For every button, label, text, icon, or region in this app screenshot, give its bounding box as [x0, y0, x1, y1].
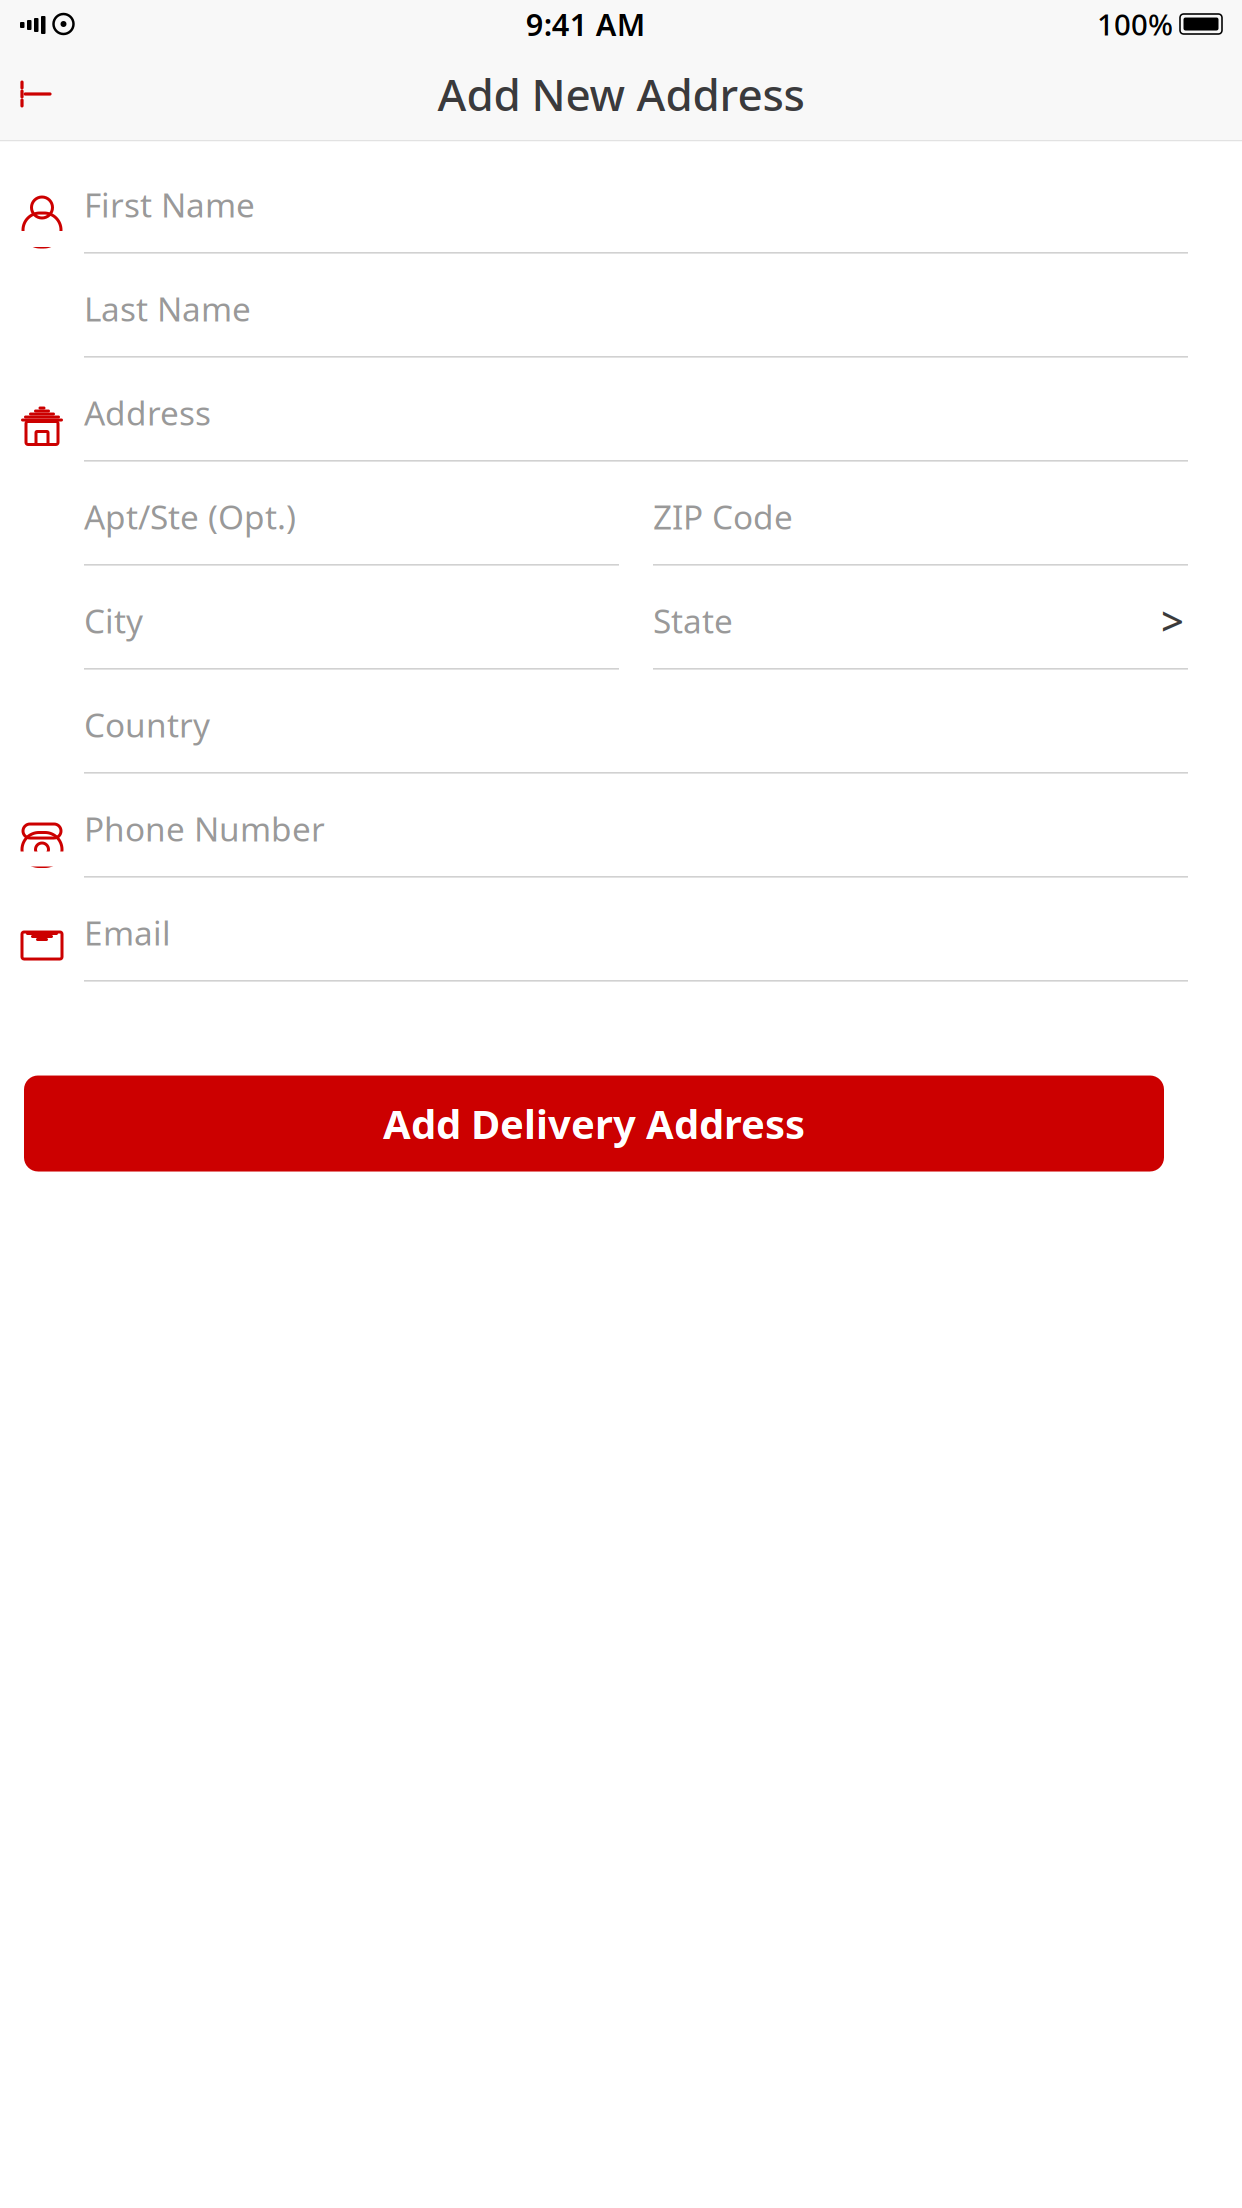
- staticText: Email: [84, 910, 171, 955]
- button[interactable]: Apt/Ste (Opt.): [84, 493, 619, 565]
- button[interactable]: Last Name: [84, 285, 1188, 357]
- button[interactable]: First Name: [84, 181, 1188, 253]
- staticText: Country: [84, 702, 210, 747]
- staticText: 100%: [1097, 4, 1173, 43]
- staticText: 9:41 AM: [526, 4, 645, 44]
- button[interactable]: State: [653, 597, 1188, 669]
- staticText: Add Delivery Address: [383, 1097, 805, 1150]
- staticText: First Name: [84, 182, 255, 227]
- staticText: State: [653, 598, 733, 643]
- staticText: ZIP Code: [653, 494, 793, 539]
- button[interactable]: City: [84, 597, 619, 669]
- button[interactable]: Address: [84, 389, 1188, 461]
- button[interactable]: Email: [84, 909, 1188, 981]
- staticText: Address: [84, 390, 211, 435]
- staticText: Add New Address: [437, 65, 804, 123]
- button[interactable]: Country: [84, 701, 1188, 773]
- button[interactable]: ZIP Code: [653, 493, 1188, 565]
- staticText: Phone Number: [84, 806, 325, 851]
- staticText: Last Name: [84, 286, 251, 331]
- button[interactable]: Phone Number: [84, 805, 1188, 877]
- button[interactable]: Add Delivery Address: [24, 1075, 1164, 1171]
- staticText: City: [84, 598, 143, 643]
- button[interactable]: Back: [0, 63, 72, 124]
- staticText: >: [1161, 594, 1184, 647]
- staticText: Apt/Ste (Opt.): [84, 494, 296, 539]
